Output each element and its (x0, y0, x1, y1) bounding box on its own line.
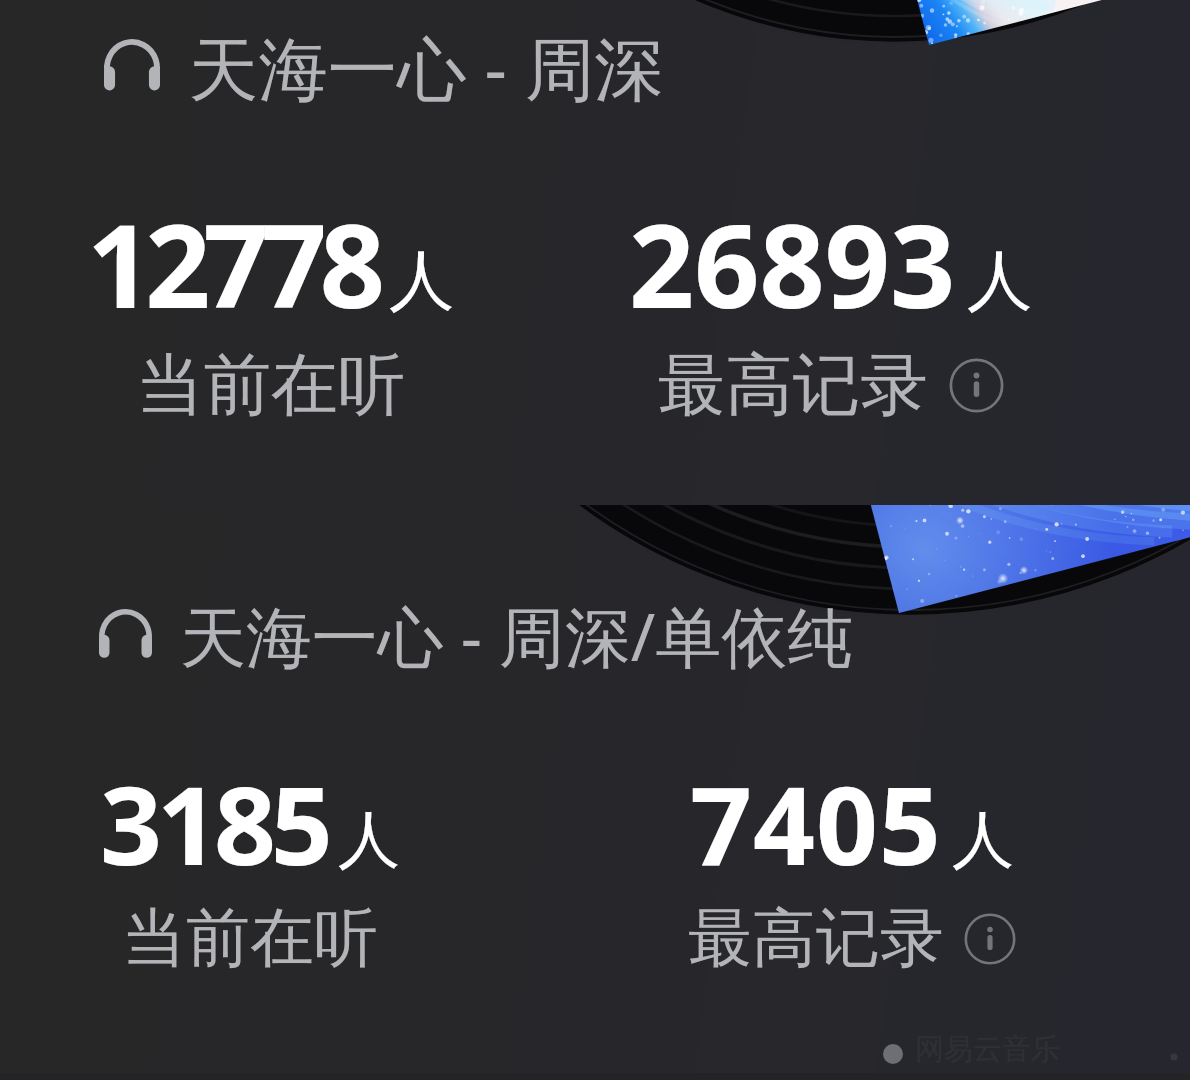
button[interactable]: 天海一心 - 周深/单依纯 (99, 591, 854, 681)
button[interactable]: Info (964, 913, 1016, 965)
staticText: 当前在听 (136, 343, 406, 428)
staticText: 人 (952, 801, 1014, 879)
staticText: 人 (967, 240, 1033, 322)
button[interactable]: 天海一心 - 周深 (0, 0, 1190, 505)
staticText: 天海一心 - 周深/单依纯 (180, 591, 854, 681)
staticText: 最高记录 (658, 343, 928, 428)
staticText: 网易云音乐 (915, 1031, 1060, 1068)
staticText: 12778 (87, 186, 378, 341)
staticText: 7405 (690, 749, 942, 897)
staticText: 人 (389, 240, 455, 322)
staticText: 人 (338, 801, 400, 879)
staticText: 天海一心 - 周深 (189, 20, 664, 115)
button[interactable]: Info (949, 358, 1004, 413)
button[interactable]: 天海一心 - 周深 (104, 20, 664, 115)
staticText: 3185 (100, 749, 328, 897)
staticText: 当前在听 (122, 898, 378, 979)
staticText: 最高记录 (688, 898, 944, 979)
button[interactable]: 天海一心 - 周深/单依纯 (0, 505, 1190, 1073)
staticText: 26893 (629, 186, 956, 341)
